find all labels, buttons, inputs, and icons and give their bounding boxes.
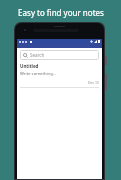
staticText: Untitled (20, 63, 39, 69)
button[interactable]: Search (20, 50, 99, 60)
staticText: Dec 13 (88, 80, 99, 85)
button[interactable]: Untitled (17, 62, 102, 88)
staticText: Write something... (20, 71, 57, 77)
staticText: Easy to find your notes (18, 7, 104, 18)
staticText: Search (30, 52, 45, 58)
